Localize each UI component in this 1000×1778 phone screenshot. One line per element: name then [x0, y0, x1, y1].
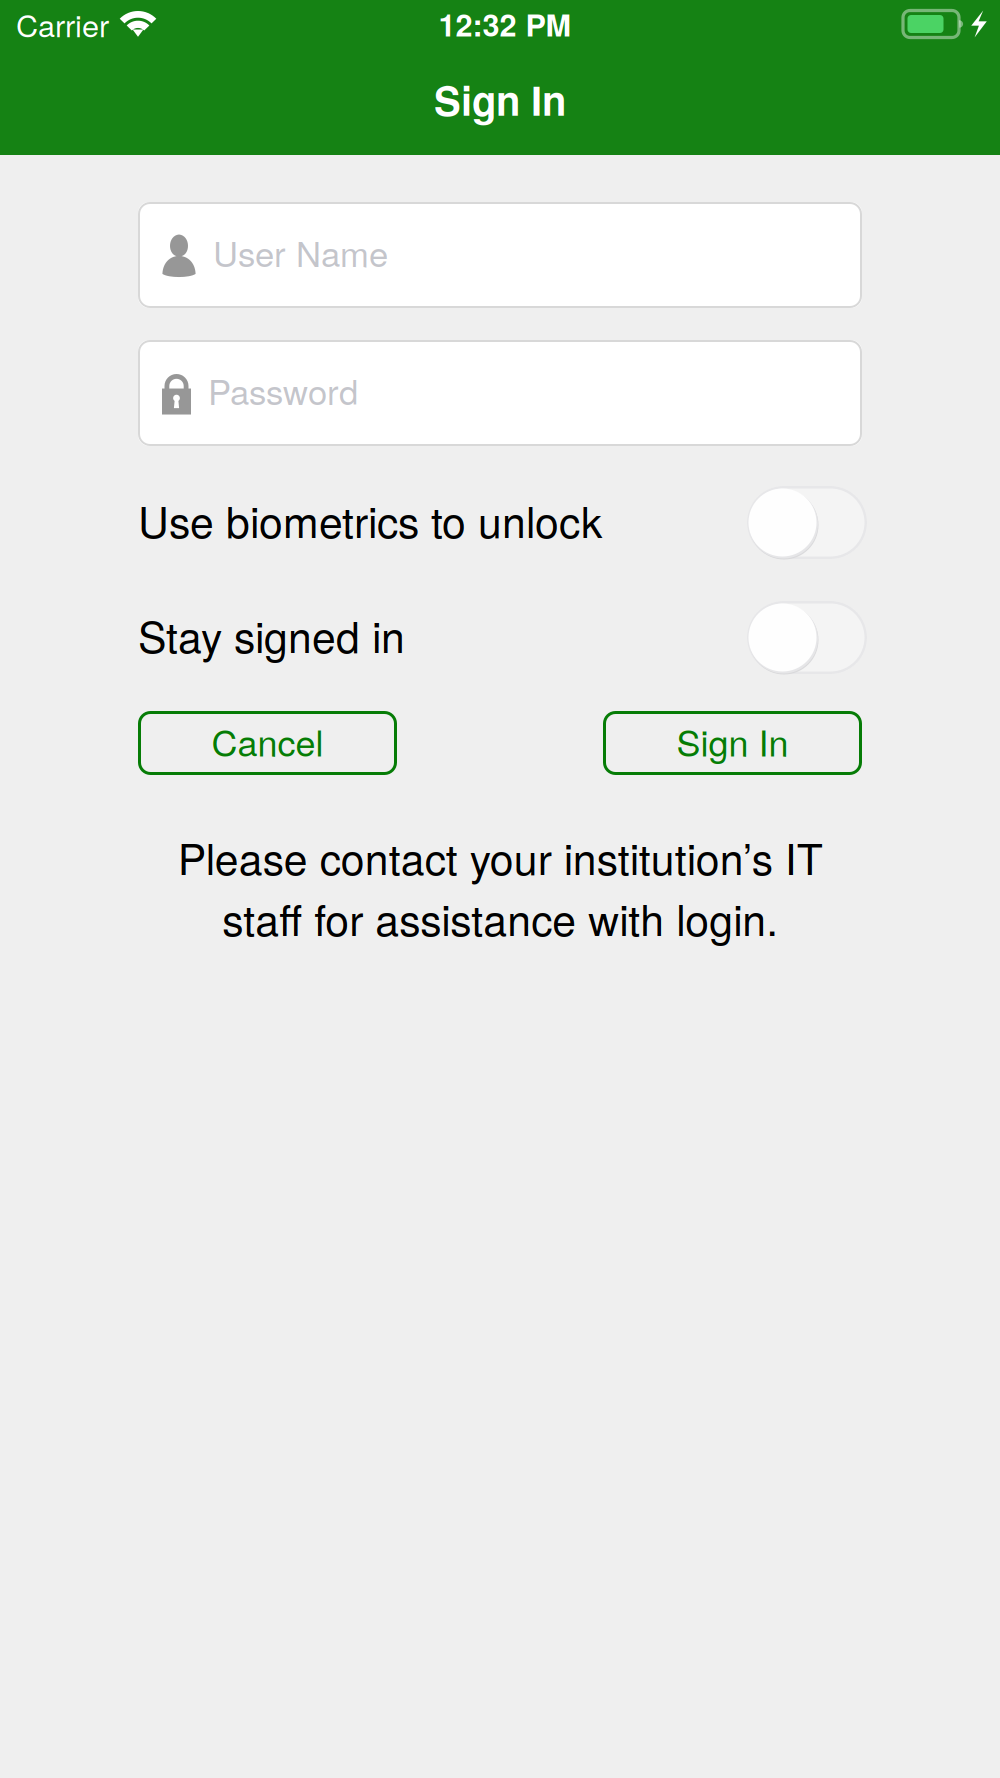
- staticText: User Name: [213, 227, 388, 277]
- button[interactable]: Use biometrics to unlock: [138, 486, 862, 559]
- staticText: 12:32 PM: [438, 2, 571, 46]
- button[interactable]: User Name: [138, 202, 862, 308]
- staticText: Password: [208, 365, 358, 415]
- staticText: Use biometrics to unlock: [138, 489, 602, 550]
- staticText: Sign In: [676, 715, 788, 767]
- button[interactable]: Sign In: [603, 711, 862, 775]
- staticText: Stay signed in: [138, 604, 405, 665]
- staticText: Please contact your institution’s IT sta…: [177, 826, 822, 948]
- button[interactable]: Stay signed in: [138, 601, 862, 674]
- button[interactable]: Password: [138, 340, 862, 446]
- staticText: Carrier: [16, 2, 109, 46]
- staticText: Sign In: [434, 71, 566, 128]
- staticText: Cancel: [211, 715, 323, 767]
- button[interactable]: Cancel: [138, 711, 397, 775]
